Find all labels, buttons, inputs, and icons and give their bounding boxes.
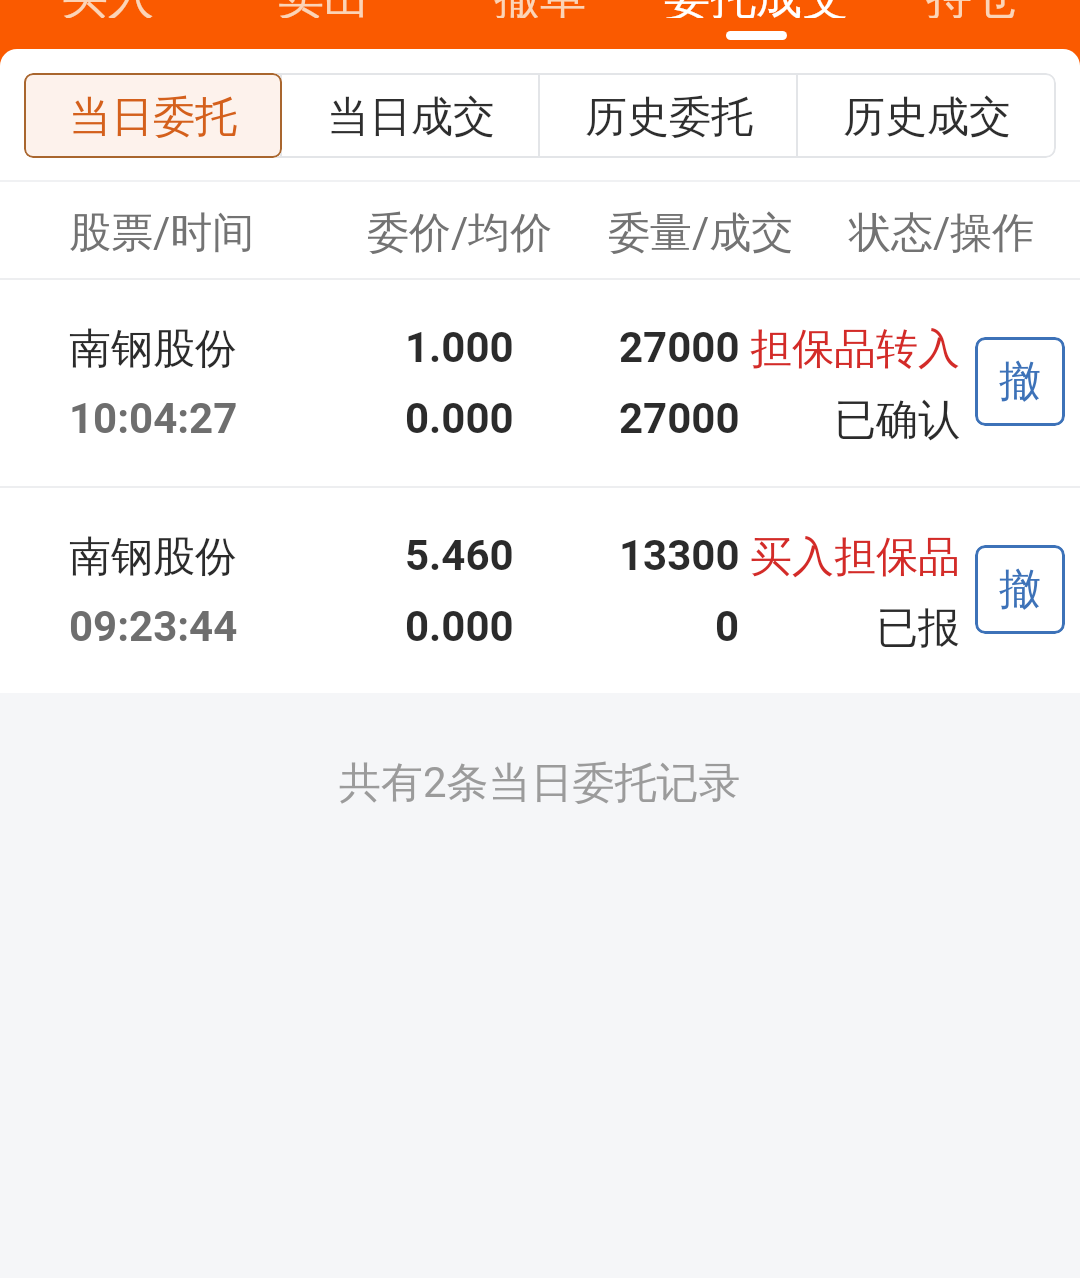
staticText: 南钢股份 bbox=[69, 323, 237, 376]
button[interactable]: 当日委托 bbox=[24, 73, 282, 158]
staticText: 10:04:27 bbox=[69, 394, 238, 443]
staticText: 买入担保品 bbox=[750, 531, 960, 584]
button[interactable]: 买入 bbox=[0, 0, 216, 49]
button[interactable]: 撤单 bbox=[432, 0, 648, 49]
staticText: 0 bbox=[715, 602, 740, 651]
button[interactable]: 撤 bbox=[975, 337, 1065, 426]
staticText: 0.000 bbox=[405, 394, 514, 443]
staticText: 持仓 bbox=[926, 0, 1018, 18]
staticText: 0.000 bbox=[405, 602, 514, 651]
staticText: 当日成交 bbox=[327, 91, 495, 144]
staticText: 已确认 bbox=[834, 394, 960, 447]
staticText: 27000 bbox=[619, 394, 740, 443]
staticText: 股票/时间 bbox=[69, 207, 255, 260]
staticText: 已报 bbox=[876, 602, 960, 655]
staticText: 历史成交 bbox=[843, 91, 1011, 144]
staticText: 共有2条当日委托记录 bbox=[339, 757, 741, 810]
staticText: 09:23:44 bbox=[69, 602, 238, 651]
staticText: 撤 bbox=[999, 563, 1041, 616]
button[interactable]: 历史委托 bbox=[540, 73, 798, 158]
staticText: 13300 bbox=[619, 531, 740, 580]
staticText: 担保品转入 bbox=[750, 323, 960, 376]
button[interactable]: 南钢股份 bbox=[0, 488, 1080, 693]
staticText: 委价/均价 bbox=[367, 207, 553, 260]
button[interactable]: 历史成交 bbox=[798, 73, 1056, 158]
button[interactable]: 委托成交 bbox=[648, 0, 864, 49]
staticText: 买入 bbox=[62, 0, 154, 18]
staticText: 27000 bbox=[619, 323, 740, 372]
staticText: 状态/操作 bbox=[849, 207, 1035, 260]
staticText: 撤单 bbox=[494, 0, 586, 18]
button[interactable]: 持仓 bbox=[864, 0, 1080, 49]
button[interactable]: 南钢股份 bbox=[0, 280, 1080, 486]
staticText: 历史委托 bbox=[585, 91, 753, 144]
staticText: 委托成交 bbox=[664, 0, 848, 18]
button[interactable]: 当日成交 bbox=[282, 73, 540, 158]
staticText: 当日委托 bbox=[69, 91, 237, 144]
staticText: 1.000 bbox=[405, 323, 514, 372]
staticText: 委量/成交 bbox=[608, 207, 794, 260]
button[interactable]: 撤 bbox=[975, 545, 1065, 634]
staticText: 南钢股份 bbox=[69, 531, 237, 584]
staticText: 5.460 bbox=[405, 531, 514, 580]
button[interactable]: 卖出 bbox=[216, 0, 432, 49]
staticText: 卖出 bbox=[278, 0, 370, 18]
staticText: 撤 bbox=[999, 355, 1041, 408]
